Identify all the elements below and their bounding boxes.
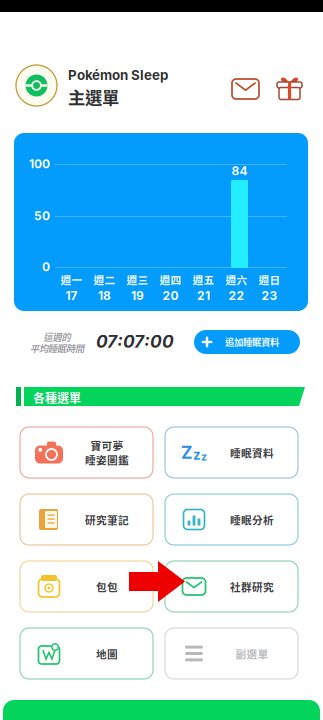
button[interactable]: 地圖 — [20, 628, 153, 679]
button[interactable]: Mail — [232, 79, 259, 99]
staticText: 寶可夢 — [90, 438, 123, 453]
staticText: 追加睡眠資料 — [225, 335, 279, 348]
staticText: 副選單 — [235, 646, 268, 661]
staticText: 這週的 — [43, 330, 70, 343]
staticText: 19 — [131, 288, 144, 303]
staticText: 21 — [197, 288, 210, 303]
staticText: 研究筆記 — [85, 512, 129, 527]
button[interactable]: 副選單 — [165, 628, 298, 679]
staticText: 包包 — [96, 579, 118, 594]
staticText: 主選單 — [68, 84, 119, 109]
staticText: 週一 — [60, 272, 82, 287]
staticText: 地圖 — [96, 646, 118, 661]
staticText: 0 — [42, 260, 50, 274]
button[interactable]: 研究筆記 — [20, 494, 153, 545]
staticText: z — [201, 450, 207, 463]
staticText: 84 — [231, 164, 247, 178]
staticText: Pokémon Sleep — [68, 67, 168, 83]
staticText: 18 — [98, 288, 111, 303]
staticText: 100 — [29, 157, 50, 171]
staticText: 各種選單 — [33, 389, 81, 406]
staticText: 50 — [34, 209, 50, 223]
staticText: 睡姿圖鑑 — [85, 452, 129, 467]
button[interactable]: 追加睡眠資料 — [194, 330, 300, 354]
staticText: z — [193, 447, 201, 463]
staticText: 平均睡眠時間 — [30, 341, 84, 355]
staticText: 週六 — [225, 272, 247, 287]
staticText: 週五 — [192, 272, 214, 287]
staticText: 睡眠分析 — [230, 512, 274, 527]
staticText: 週三 — [126, 272, 148, 287]
staticText: 睡眠資料 — [230, 445, 274, 460]
button[interactable]: Profile — [16, 65, 57, 106]
button[interactable]: 包包 — [20, 561, 153, 612]
button[interactable]: 睡眠分析 — [165, 494, 298, 545]
button[interactable]: 社群研究 — [165, 561, 298, 612]
staticText: 23 — [261, 288, 277, 303]
staticText: 社群研究 — [230, 579, 274, 594]
staticText: 週四 — [159, 272, 181, 287]
staticText: Z — [181, 442, 193, 463]
staticText: 17 — [65, 288, 77, 303]
staticText: 22 — [228, 288, 244, 303]
button[interactable]: Z — [165, 427, 298, 478]
staticText: 週二 — [93, 272, 115, 287]
staticText: 週日 — [258, 272, 280, 287]
staticText: 20 — [162, 288, 178, 303]
button[interactable]: Gifts — [277, 77, 302, 100]
button[interactable]: 寶可夢 — [20, 427, 153, 478]
staticText: 07:07:00 — [96, 331, 174, 352]
